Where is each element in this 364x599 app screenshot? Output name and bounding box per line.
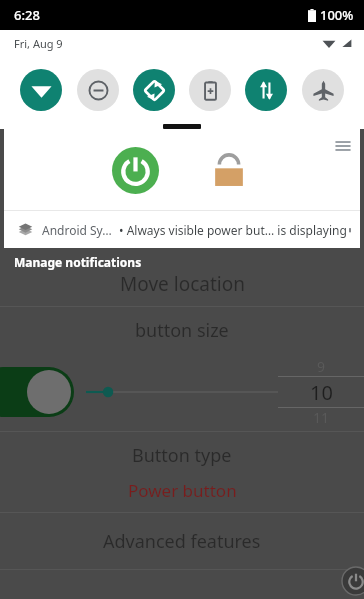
button[interactable]: Airplane mode <box>302 69 344 111</box>
button[interactable]: Power button overlay <box>342 567 364 595</box>
other: Wi-Fi status <box>322 36 336 50</box>
staticText: button size <box>135 318 229 343</box>
button[interactable]: Do Not Disturb <box>77 69 119 111</box>
button[interactable]: Enable <box>0 367 74 417</box>
staticText: 11 <box>313 408 330 427</box>
button[interactable]: Android Sy… <box>4 211 360 248</box>
staticText: 100% <box>320 6 354 24</box>
button[interactable]: Wi-Fi <box>20 69 62 111</box>
button[interactable]: Manage notifications <box>14 254 142 270</box>
staticText: Power button <box>128 479 237 502</box>
staticText: 9 <box>317 357 326 376</box>
other: Signal strength <box>340 37 352 49</box>
staticText: 6:28 <box>14 6 40 24</box>
staticText: • Always visible power but… is displayin… <box>119 222 350 238</box>
button[interactable]: Battery saver <box>189 69 231 111</box>
button[interactable]: Menu <box>334 137 352 155</box>
staticText: Advanced features <box>103 529 261 554</box>
button[interactable]: Drag handle <box>163 124 201 129</box>
button[interactable]: Fri, Aug 9 <box>14 36 63 51</box>
button[interactable]: Advanced features <box>0 513 364 569</box>
button[interactable]: Power <box>110 145 160 195</box>
button[interactable]: Lock <box>204 145 254 195</box>
button[interactable]: Button size slider <box>86 380 278 404</box>
button[interactable]: Move location <box>120 271 245 297</box>
staticText: Android Sy… <box>42 222 112 238</box>
button[interactable]: Button type <box>0 432 364 512</box>
staticText: Button type <box>132 443 232 468</box>
button[interactable]: Auto rotate <box>133 69 175 111</box>
button[interactable]: 10 <box>310 379 333 406</box>
button[interactable]: Mobile data <box>245 69 287 111</box>
